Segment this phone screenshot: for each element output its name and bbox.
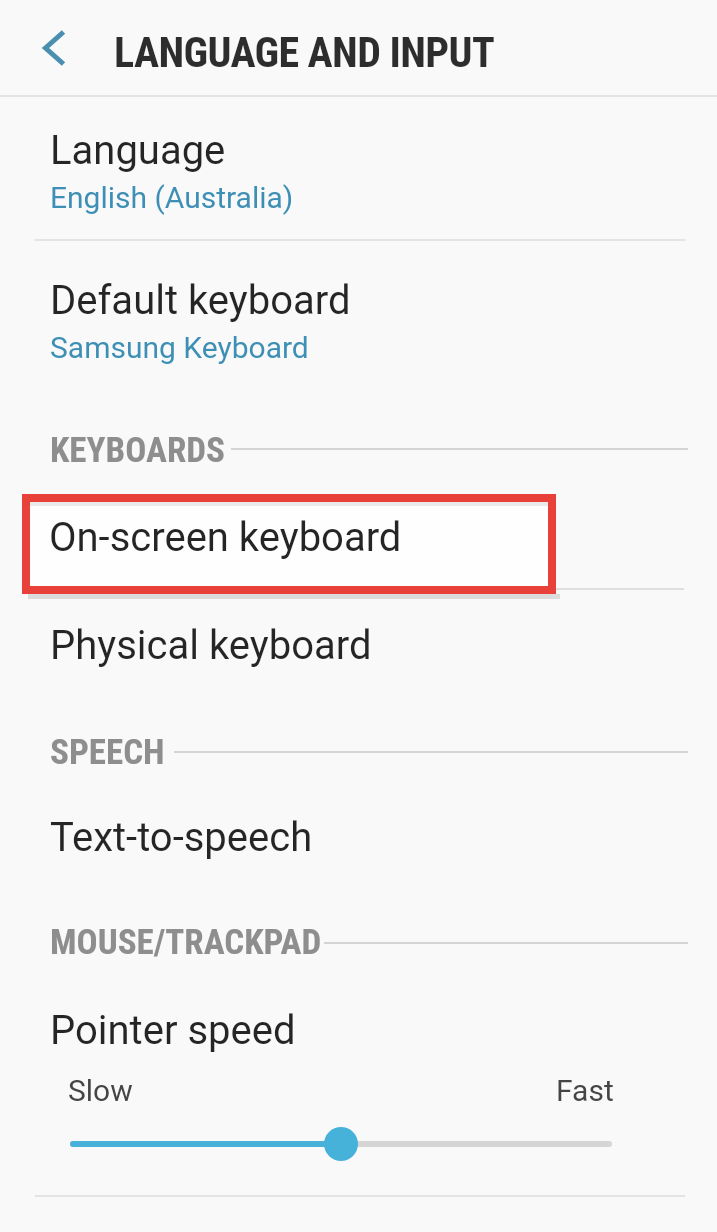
staticText: Physical keyboard — [50, 622, 372, 669]
button[interactable] — [20, 16, 90, 82]
staticText: Pointer speed — [50, 1007, 296, 1054]
staticText: Language — [50, 127, 226, 174]
staticText: Fast — [556, 1073, 614, 1108]
button[interactable]: Pointer speed — [0, 985, 717, 1185]
staticText: MOUSE/TRACKPAD — [50, 922, 322, 963]
button[interactable]: Default keyboard — [0, 241, 717, 391]
button[interactable]: On-screen keyboard — [30, 502, 548, 586]
staticText: Slow — [68, 1073, 133, 1108]
staticText: SPEECH — [50, 732, 165, 773]
staticText: Text-to-speech — [50, 814, 313, 861]
button[interactable]: Physical keyboard — [0, 600, 717, 695]
staticText: English (Australia) — [50, 180, 294, 215]
staticText: On-screen keyboard — [49, 514, 402, 561]
staticText: LANGUAGE AND INPUT — [114, 28, 495, 77]
staticText: Samsung Keyboard — [50, 330, 309, 365]
button[interactable]: Text-to-speech — [0, 790, 717, 885]
staticText: Default keyboard — [50, 277, 351, 324]
staticText: KEYBOARDS — [50, 430, 225, 471]
button[interactable]: Language — [0, 97, 717, 239]
